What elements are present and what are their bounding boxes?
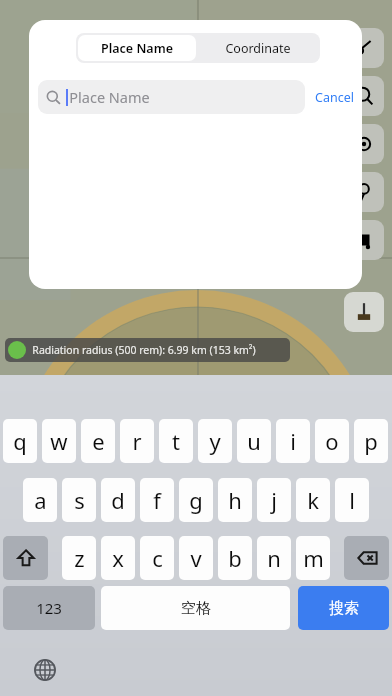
button[interactable]: l <box>335 478 369 522</box>
button[interactable]: q <box>3 419 37 463</box>
staticText: l <box>349 485 355 515</box>
button[interactable]: r <box>120 419 154 463</box>
button[interactable]: w <box>42 419 76 463</box>
button[interactable]: x <box>101 536 135 580</box>
button[interactable]: Shift <box>3 536 48 580</box>
button[interactable]: Coordinate <box>198 35 318 61</box>
staticText: j <box>271 485 277 515</box>
button[interactable]: Switch keyboard <box>30 655 60 685</box>
button[interactable]: e <box>81 419 115 463</box>
button[interactable]: c <box>140 536 174 580</box>
button[interactable]: j <box>257 478 291 522</box>
staticText: c <box>152 543 163 573</box>
staticText: v <box>190 543 202 573</box>
staticText: i <box>290 426 296 456</box>
staticText: z <box>74 543 85 573</box>
staticText: s <box>74 485 85 515</box>
staticText: k <box>307 485 319 515</box>
staticText: p <box>364 426 378 456</box>
staticText: Radiation radius (500 rem): 6.99 km (153… <box>32 343 256 357</box>
button[interactable]: d <box>101 478 135 522</box>
button[interactable]: Compass <box>344 292 384 332</box>
button[interactable]: Place Name <box>78 35 196 61</box>
staticText: n <box>267 543 281 573</box>
staticText: b <box>228 543 242 573</box>
button[interactable]: Backspace <box>344 536 389 580</box>
staticText: Place Name <box>69 87 150 107</box>
button[interactable]: Search <box>344 76 384 116</box>
staticText: o <box>325 426 339 456</box>
button[interactable]: Visibility <box>344 124 384 164</box>
button[interactable]: z <box>62 536 96 580</box>
button[interactable]: s <box>62 478 96 522</box>
staticText: x <box>112 543 124 573</box>
staticText: Coordinate <box>225 40 291 57</box>
button[interactable]: y <box>198 419 232 463</box>
staticText: m <box>303 543 324 573</box>
button[interactable]: Vehicle <box>344 220 384 260</box>
staticText: Place Name <box>101 40 173 57</box>
button[interactable]: t <box>159 419 193 463</box>
staticText: a <box>34 485 47 515</box>
button[interactable]: n <box>257 536 291 580</box>
staticText: r <box>132 426 142 456</box>
button[interactable]: p <box>354 419 388 463</box>
staticText: 空格 <box>181 599 211 618</box>
staticText: 搜索 <box>329 599 359 618</box>
button[interactable]: f <box>140 478 174 522</box>
staticText: g <box>189 485 203 515</box>
staticText: w <box>50 426 68 456</box>
staticText: t <box>172 426 180 456</box>
button[interactable]: 搜索 <box>298 586 389 630</box>
button[interactable]: a <box>23 478 57 522</box>
staticText: u <box>247 426 261 456</box>
button[interactable]: v <box>179 536 213 580</box>
button[interactable]: Measure <box>344 28 384 68</box>
staticText: h <box>228 485 242 515</box>
button[interactable]: Radiation radius (500 rem): 6.99 km (153… <box>5 338 290 362</box>
staticText: q <box>13 426 27 456</box>
button[interactable]: 空格 <box>101 586 290 630</box>
staticText: e <box>92 426 105 456</box>
button[interactable]: b <box>218 536 252 580</box>
button[interactable]: g <box>179 478 213 522</box>
staticText: f <box>153 485 161 515</box>
button[interactable]: h <box>218 478 252 522</box>
staticText: d <box>111 485 125 515</box>
button[interactable]: Location <box>344 172 384 212</box>
button[interactable]: o <box>315 419 349 463</box>
button[interactable]: m <box>296 536 330 580</box>
button[interactable]: 123 <box>3 586 95 630</box>
button[interactable]: Place Name <box>38 80 305 114</box>
button[interactable]: i <box>276 419 310 463</box>
staticText: Cancel <box>315 89 354 106</box>
button[interactable]: u <box>237 419 271 463</box>
staticText: 123 <box>36 598 62 618</box>
button[interactable]: k <box>296 478 330 522</box>
staticText: y <box>209 426 221 456</box>
button[interactable]: Cancel <box>309 80 359 114</box>
